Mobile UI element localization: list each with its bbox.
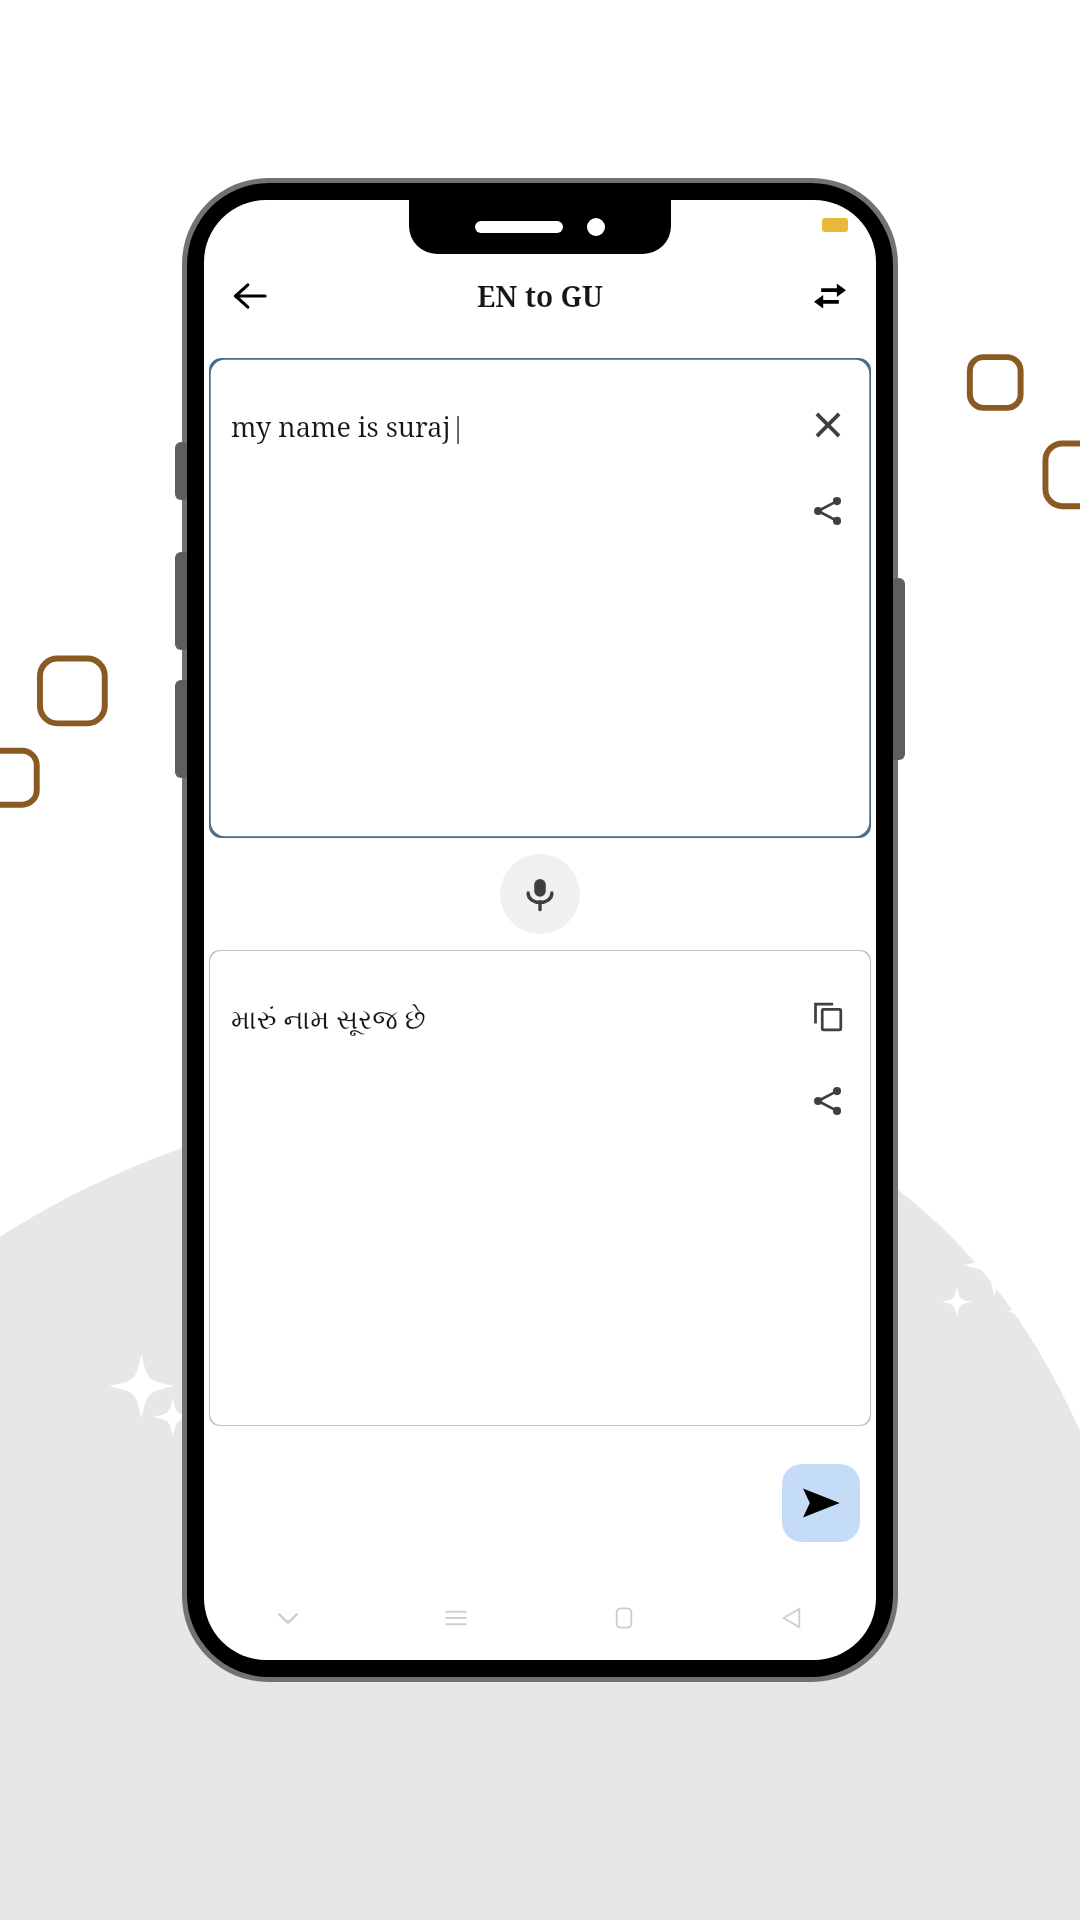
button[interactable]: Share translation xyxy=(801,1074,855,1128)
button[interactable]: Back xyxy=(218,264,282,328)
button[interactable]: Hide keyboard xyxy=(204,1584,372,1652)
button[interactable]: Voice input xyxy=(500,854,580,934)
button[interactable]: Share input text xyxy=(801,484,855,538)
button[interactable]: Swap languages xyxy=(798,264,862,328)
staticText: EN to GU xyxy=(477,277,603,315)
button[interactable]: Back xyxy=(708,1584,876,1652)
button[interactable]: Send translation xyxy=(782,1464,860,1542)
button[interactable]: Copy translation xyxy=(801,990,855,1044)
button[interactable]: Menu xyxy=(372,1584,540,1652)
button[interactable]: મારું નામ સૂરજ છે xyxy=(209,950,871,1426)
button[interactable]: Home xyxy=(540,1584,708,1652)
staticText: my name is suraj| xyxy=(231,408,801,445)
button[interactable]: my name is suraj| xyxy=(209,358,871,838)
button[interactable]: Clear text xyxy=(801,398,855,452)
staticText: મારું નામ સૂરજ છે xyxy=(231,1000,801,1037)
